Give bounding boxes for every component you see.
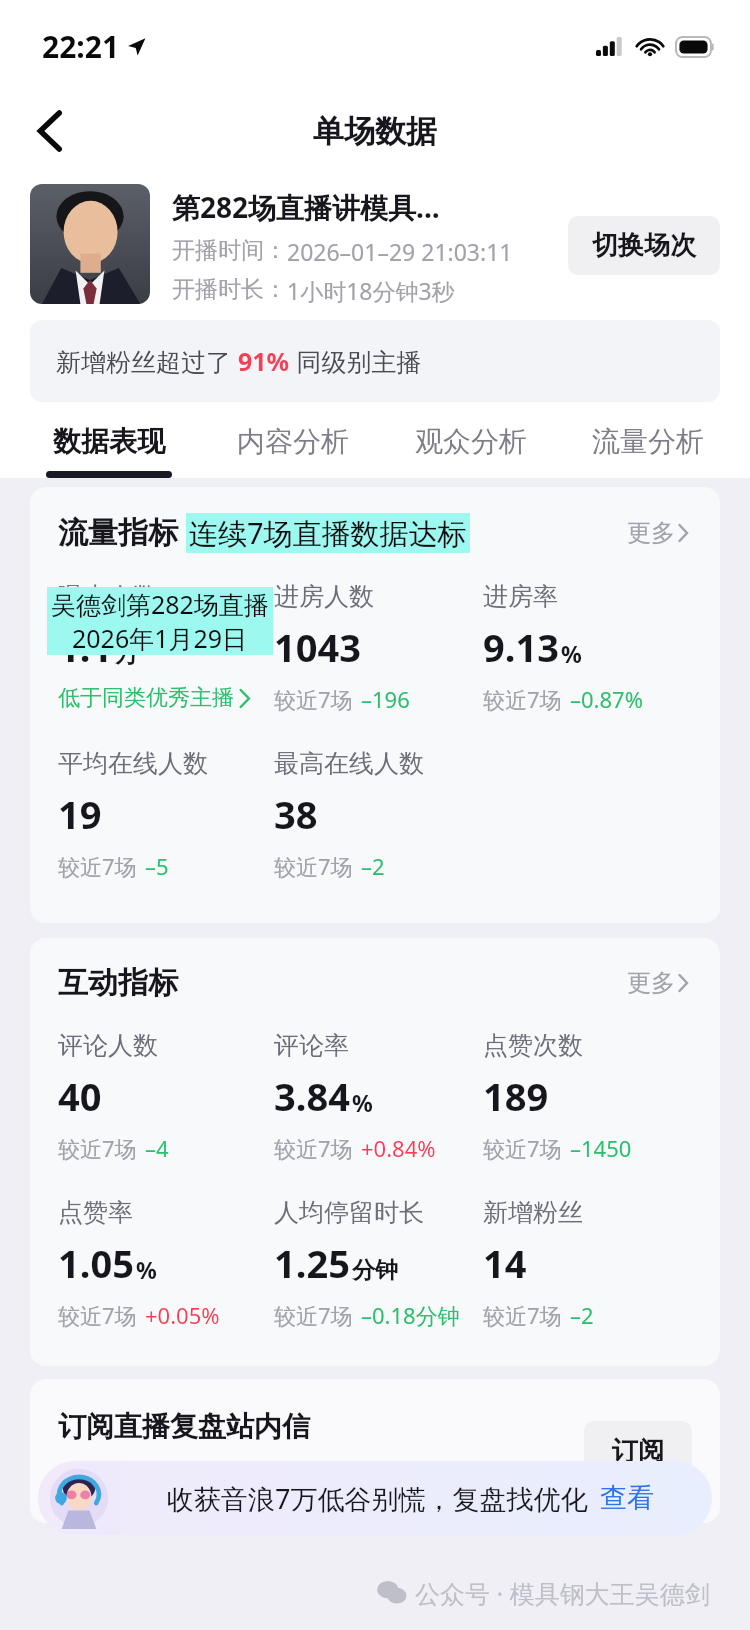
staticText: 平均在线人数 — [58, 748, 208, 779]
staticText: 较近7场 — [274, 851, 353, 881]
staticText: 分钟 — [352, 1256, 398, 1285]
button[interactable]: 内容分析 — [233, 424, 353, 478]
staticText: –0.87% — [570, 684, 643, 714]
staticText: 开播时间： — [172, 236, 287, 265]
button[interactable]: 更多 — [623, 514, 692, 552]
staticText: 进房人数 — [274, 581, 374, 612]
staticText: 1.25 — [274, 1237, 350, 1289]
staticText: 较近7场 — [274, 1300, 353, 1330]
staticText: 同级别主播 — [290, 344, 422, 378]
staticText: 新增粉丝超过了 — [56, 344, 238, 378]
staticText: 收获音浪7万低谷别慌，复盘找优化 — [167, 1480, 588, 1517]
staticText: 开播时长： — [172, 275, 287, 304]
staticText: 更多 — [627, 518, 675, 548]
button[interactable]: 订阅 — [584, 1421, 692, 1482]
staticText: 内容分析 — [237, 424, 349, 459]
staticText: –2 — [361, 851, 385, 881]
staticText: 观众分析 — [415, 424, 527, 459]
staticText: 较近7场 — [483, 684, 562, 714]
staticText: +0.84% — [361, 1133, 436, 1163]
staticText: 较近7场 — [274, 684, 353, 714]
button[interactable]: Avatar — [30, 184, 150, 304]
button[interactable]: 观众分析 — [411, 424, 531, 478]
staticText: 较近7场 — [58, 851, 137, 881]
staticText: 最高在线人数 — [274, 748, 424, 779]
button[interactable]: 更多 — [623, 964, 692, 1002]
staticText: 评论人数 — [58, 1030, 158, 1061]
staticText: 进房率 — [483, 581, 558, 612]
staticText: 人均停留时长 — [274, 1197, 424, 1228]
staticText: 查看 — [600, 1481, 654, 1515]
staticText: 1小时18分钟3秒 — [287, 275, 455, 306]
staticText: 2026年1月29日 — [72, 621, 248, 655]
staticText: +0.05% — [145, 1300, 220, 1330]
staticText: 互动指标 — [58, 964, 178, 1002]
staticText: 较近7场 — [274, 1133, 353, 1163]
staticText: 1043 — [274, 621, 361, 673]
staticText: 数据表现 — [53, 424, 165, 459]
staticText: –1450 — [570, 1133, 632, 1163]
staticText: 较近7场 — [483, 1133, 562, 1163]
button[interactable]: 切换场次 — [568, 216, 720, 275]
staticText: 2026–01–29 21:03:11 — [287, 236, 513, 267]
staticText: 订阅 — [612, 1435, 664, 1468]
staticText: 流量分析 — [592, 424, 704, 459]
staticText: 单场数据 — [313, 112, 437, 151]
button[interactable]: 新增粉丝超过了 — [30, 320, 720, 402]
staticText: 189 — [483, 1070, 549, 1122]
staticText: 38 — [274, 788, 318, 840]
staticText: 1.1 — [58, 621, 113, 673]
staticText: 连续7场直播数据达标 — [189, 513, 467, 553]
staticText: –196 — [361, 684, 410, 714]
staticText: 91% — [238, 344, 290, 378]
staticText: 将在… — [58, 1460, 125, 1493]
staticText: 评论率 — [274, 1030, 349, 1061]
staticText: 19 — [58, 788, 102, 840]
staticText: 9.13 — [483, 621, 559, 673]
staticText: –5 — [145, 851, 169, 881]
button[interactable]: 数据表现 — [42, 424, 176, 478]
staticText: % — [352, 1087, 373, 1118]
staticText: 万 — [115, 640, 138, 669]
staticText: 切换场次 — [592, 229, 696, 262]
staticText: 更多 — [627, 968, 675, 998]
staticText: 较近7场 — [58, 1300, 137, 1330]
staticText: 3.84 — [274, 1070, 350, 1122]
staticText: 第282场直播讲模具... — [172, 188, 440, 226]
staticText: 14 — [483, 1237, 527, 1289]
staticText: % — [561, 638, 582, 669]
staticText: 订阅直播复盘站内信 — [58, 1409, 310, 1444]
staticText: 新增粉丝 — [483, 1197, 583, 1228]
staticText: 22:21 — [42, 26, 120, 67]
staticText: 点赞率 — [58, 1197, 133, 1228]
button[interactable]: 流量分析 — [588, 424, 708, 478]
staticText: –2 — [570, 1300, 594, 1330]
staticText: 吴德剑第282场直播 — [51, 587, 269, 621]
staticText: 40 — [58, 1070, 102, 1122]
staticText: –0.18分钟 — [361, 1300, 460, 1330]
button[interactable]: Back — [22, 103, 78, 159]
button[interactable]: 收获音浪7万低谷别慌，复盘找优化 — [38, 1461, 712, 1535]
staticText: 较近7场 — [483, 1300, 562, 1330]
staticText: 公众号 · 模具钢大王吴德剑 — [415, 1576, 710, 1610]
staticText: 较近7场 — [58, 1133, 137, 1163]
staticText: % — [136, 1254, 157, 1285]
staticText: –4 — [145, 1133, 169, 1163]
staticText: 点赞次数 — [483, 1030, 583, 1061]
staticText: 低于同类优秀主播 — [58, 684, 234, 712]
staticText: 流量指标 — [58, 514, 178, 552]
staticText: 曝光人数 — [58, 581, 158, 612]
staticText: 1.05 — [58, 1237, 134, 1289]
